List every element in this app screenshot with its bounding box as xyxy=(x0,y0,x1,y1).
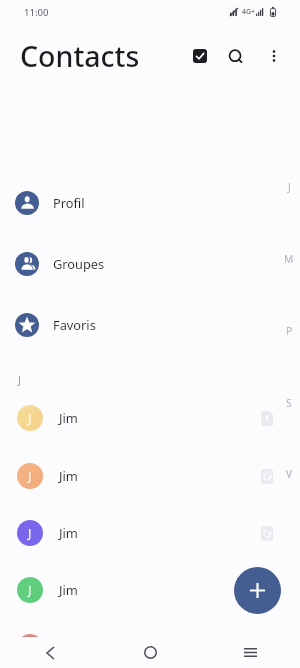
staticText: Jim xyxy=(59,524,78,542)
staticText: Jim xyxy=(59,409,78,427)
staticText: Profil xyxy=(53,194,85,211)
staticText: S xyxy=(286,396,292,410)
staticText: V xyxy=(286,467,293,481)
staticText: J xyxy=(28,468,32,484)
staticText: Groupes xyxy=(53,255,105,272)
button[interactable]: Home xyxy=(100,637,200,668)
staticText: J xyxy=(28,525,32,541)
button[interactable]: J xyxy=(0,504,300,561)
staticText: 4G+ xyxy=(242,7,256,17)
button[interactable]: Select contacts xyxy=(183,39,217,73)
button[interactable]: Recent apps xyxy=(200,637,300,668)
staticText: Jim xyxy=(59,467,78,485)
staticText: J xyxy=(28,410,32,426)
staticText: J xyxy=(18,372,22,387)
staticText: M xyxy=(284,252,294,266)
button[interactable]: Search xyxy=(219,40,253,74)
staticText: P xyxy=(286,324,293,338)
staticText: 11:00 xyxy=(24,6,49,19)
button[interactable]: Favoris xyxy=(0,294,300,355)
staticText: Contacts xyxy=(20,37,140,76)
button[interactable]: J xyxy=(0,389,300,446)
button[interactable]: Back xyxy=(0,637,100,668)
button[interactable]: J xyxy=(0,618,300,637)
button[interactable]: Groupes xyxy=(0,233,300,294)
button[interactable]: Profil xyxy=(0,172,300,233)
button[interactable]: J xyxy=(0,561,300,618)
staticText: Jim xyxy=(59,581,78,599)
staticText: J xyxy=(28,582,32,598)
staticText: J xyxy=(288,180,291,194)
button[interactable]: J xyxy=(0,447,300,504)
button[interactable]: Add contact xyxy=(234,567,281,614)
button[interactable]: More options xyxy=(257,39,291,73)
staticText: Favoris xyxy=(53,316,96,333)
